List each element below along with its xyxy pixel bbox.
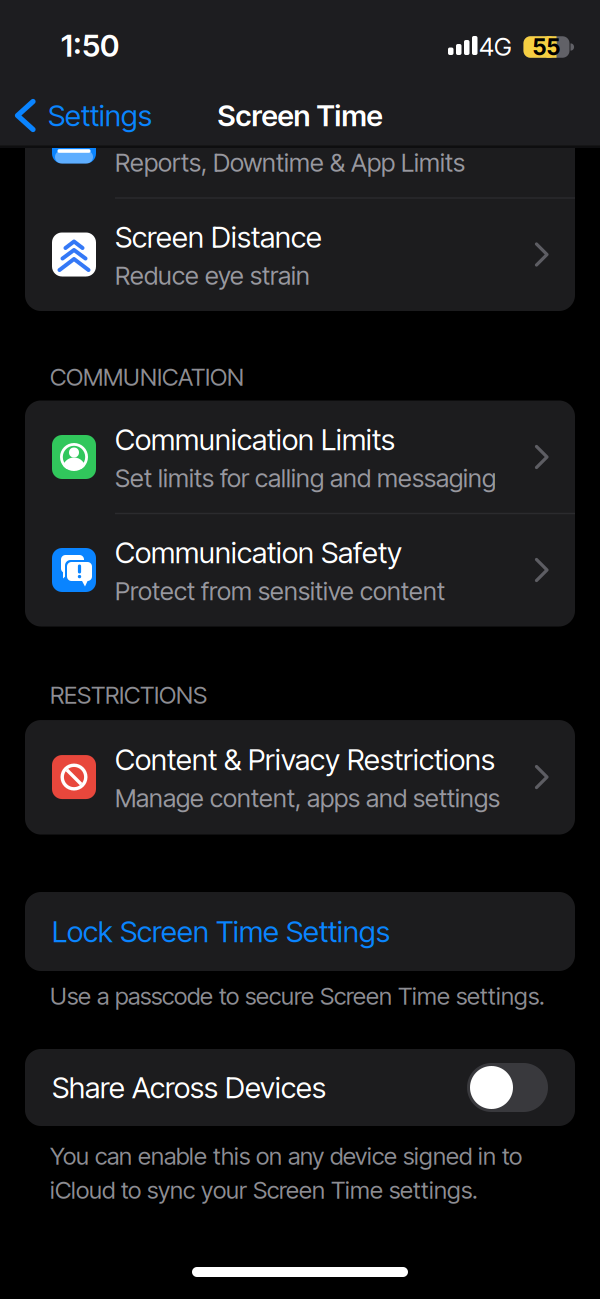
staticText: Communication Limits — [115, 422, 395, 457]
button[interactable]: Share Across Devices — [25, 1049, 575, 1126]
staticText: Manage content, apps and settings — [115, 783, 500, 813]
staticText: Screen Distance — [115, 220, 322, 254]
button[interactable]: Communication Limits — [25, 400, 575, 513]
staticText: Set limits for calling and messaging — [115, 463, 496, 493]
staticText: Content & Privacy Restrictions — [115, 742, 495, 777]
button[interactable]: Communication Safety — [25, 513, 575, 626]
staticText: Lock Screen Time Settings — [52, 914, 390, 949]
staticText: Use a passcode to secure Screen Time set… — [50, 982, 545, 1010]
button[interactable]: Screen Distance — [25, 198, 575, 311]
staticText: 4G — [479, 32, 512, 61]
button[interactable]: App & Website Activity — [25, 85, 575, 198]
staticText: Reduce eye strain — [115, 261, 310, 290]
staticText: Screen Time — [217, 98, 382, 133]
staticText: Protect from sensitive content — [115, 576, 445, 606]
staticText: Reports, Downtime & App Limits — [115, 148, 465, 177]
staticText: Communication Safety — [115, 535, 402, 570]
staticText: App & Website Activity — [115, 107, 398, 141]
button[interactable]: Lock Screen Time Settings — [25, 892, 575, 971]
staticText: 55 — [532, 34, 560, 60]
button[interactable]: Content & Privacy Restrictions — [25, 720, 575, 833]
staticText: 1:50 — [61, 27, 119, 64]
staticText: iCloud to sync your Screen Time settings… — [50, 1176, 478, 1204]
staticText: Share Across Devices — [52, 1070, 326, 1105]
staticText: RESTRICTIONS — [50, 681, 207, 709]
staticText: You can enable this on any device signed… — [50, 1142, 522, 1170]
staticText: Settings — [48, 98, 152, 133]
button[interactable]: Back to Settings — [12, 99, 162, 132]
staticText: COMMUNICATION — [50, 363, 244, 391]
